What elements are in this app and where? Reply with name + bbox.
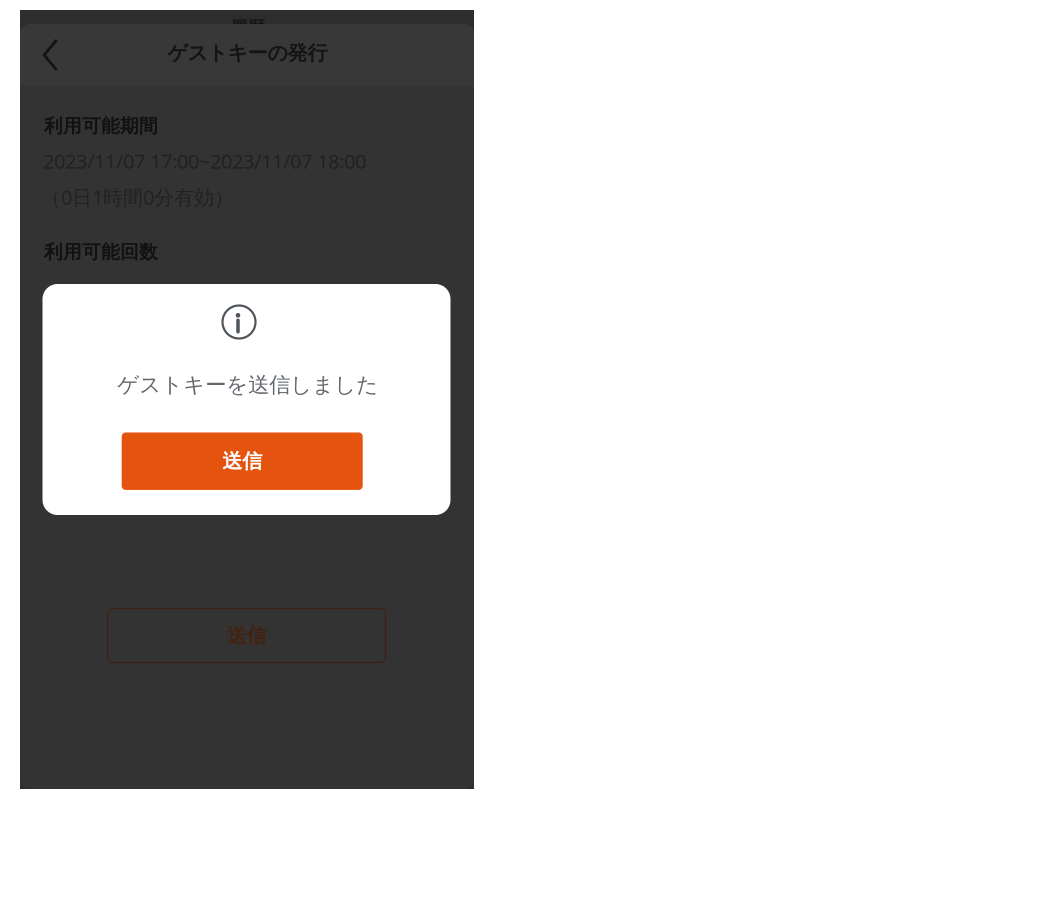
staticText: 利用可能期間 [44, 114, 158, 137]
staticText: 2023/11/07 17:00~2023/11/07 18:00 [43, 148, 366, 174]
staticText: 履歴 [230, 17, 264, 38]
staticText: ゲストキーを送信しました [117, 372, 378, 398]
staticText: 送信 [227, 623, 267, 648]
staticText: ゲストキーの発行 [167, 41, 327, 65]
button[interactable]: 送信 [108, 608, 386, 662]
staticText: （0日1時間0分有効） [41, 184, 234, 210]
staticText: 利用可能回数 [44, 240, 158, 263]
button[interactable]: Back [27, 30, 73, 80]
button[interactable]: 送信 [122, 432, 363, 490]
staticText: 送信 [222, 449, 262, 473]
